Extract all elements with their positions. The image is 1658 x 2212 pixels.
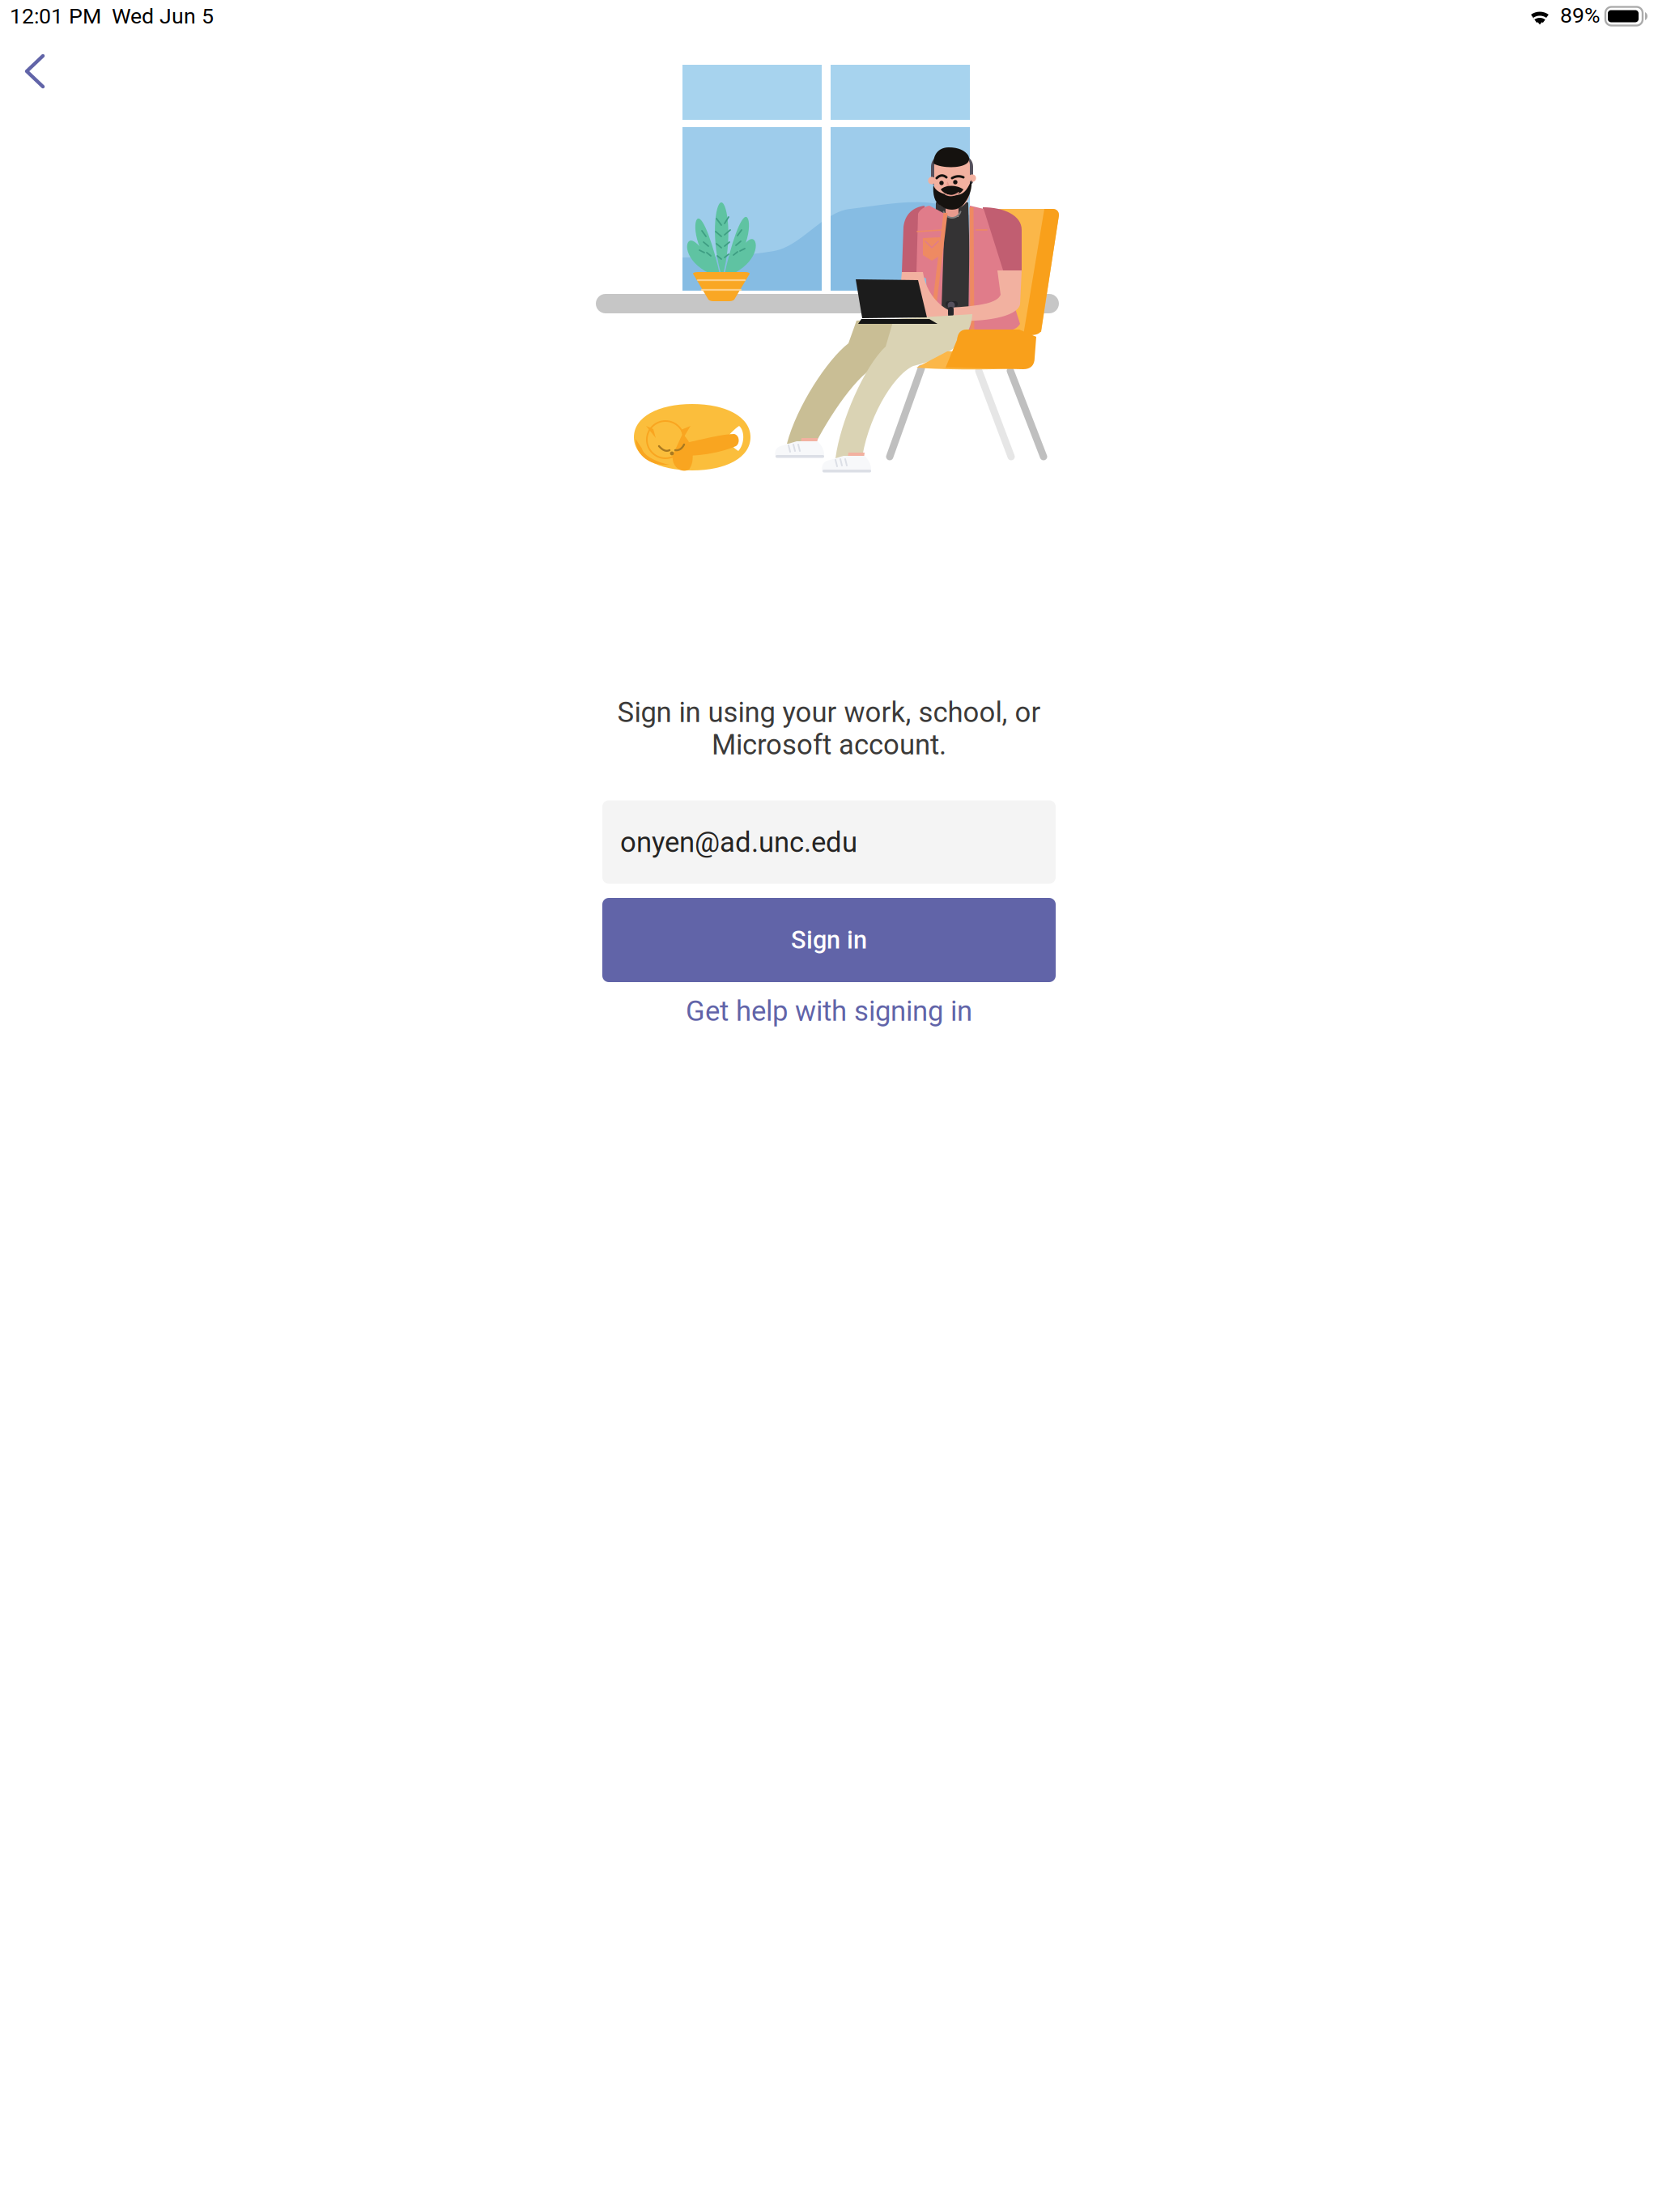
staticText: Sign in using your work, school, or <box>617 696 1041 729</box>
staticText: Wed Jun 5 <box>112 4 214 29</box>
staticText: onyen@ad.unc.edu <box>620 826 857 859</box>
staticText: Sign in <box>791 925 867 955</box>
staticText: Microsoft account. <box>712 728 946 761</box>
staticText: Get help with signing in <box>686 995 972 1028</box>
button[interactable]: Back <box>0 36 70 107</box>
staticText: 12:01 PM <box>10 4 101 29</box>
button[interactable]: Sign in <box>602 898 1056 982</box>
staticText: 89% <box>1560 3 1601 28</box>
button[interactable]: Get help with signing in <box>602 982 1056 1040</box>
